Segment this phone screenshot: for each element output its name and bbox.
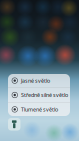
- button[interactable]: Tlumené světlo: [8, 102, 70, 116]
- button[interactable]: Jasné světlo: [8, 74, 70, 88]
- staticText: Středně silné světlo: [21, 91, 68, 99]
- staticText: Jasné světlo: [21, 77, 50, 84]
- button[interactable]: Středně silné světlo: [8, 88, 70, 102]
- staticText: Tlumené světlo: [21, 106, 58, 113]
